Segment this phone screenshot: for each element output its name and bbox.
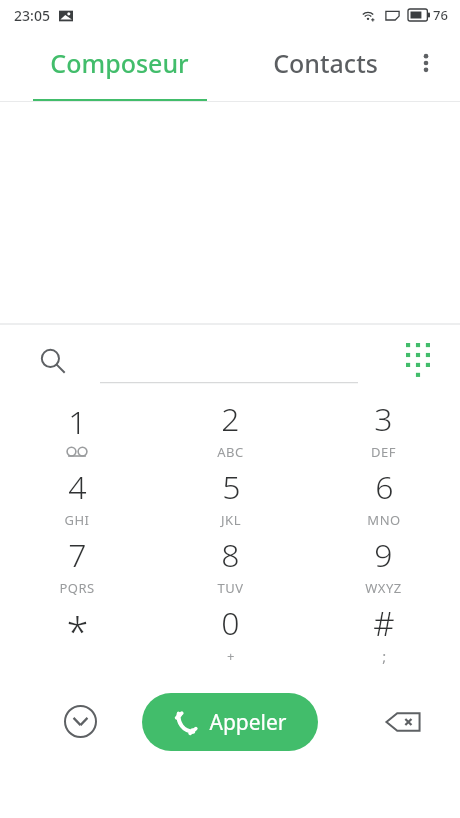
staticText: 6: [375, 465, 394, 509]
button[interactable]: Search: [28, 336, 78, 386]
button[interactable]: 8: [154, 533, 307, 601]
staticText: *: [66, 604, 89, 658]
staticText: 23:05: [14, 6, 50, 25]
button[interactable]: 5: [154, 465, 307, 533]
staticText: JKL: [221, 511, 241, 529]
button[interactable]: #: [307, 601, 460, 669]
staticText: 3: [374, 397, 393, 441]
staticText: 1: [68, 400, 87, 444]
button[interactable]: 0: [154, 601, 307, 669]
staticText: GHI: [64, 511, 90, 529]
button[interactable]: 4: [0, 465, 154, 533]
button[interactable]: 9: [307, 533, 460, 601]
button[interactable]: 3: [307, 397, 460, 465]
staticText: DEF: [371, 443, 396, 461]
button[interactable]: 2: [154, 397, 307, 465]
staticText: WXYZ: [365, 579, 402, 597]
staticText: +: [227, 647, 235, 665]
button[interactable]: 7: [0, 533, 154, 601]
staticText: 8: [221, 533, 240, 577]
staticText: 2: [221, 397, 240, 441]
staticText: Contacts: [273, 46, 378, 80]
staticText: ABC: [217, 443, 244, 461]
button[interactable]: 1: [0, 397, 154, 465]
staticText: 76: [433, 6, 448, 24]
button[interactable]: Keypad: [394, 331, 442, 379]
staticText: PQRS: [59, 579, 95, 597]
button[interactable]: Appeler: [142, 693, 318, 751]
staticText: 0: [221, 601, 240, 645]
button[interactable]: Contacts: [240, 30, 410, 102]
staticText: #: [373, 601, 395, 646]
staticText: MNO: [367, 511, 401, 529]
staticText: ;: [382, 646, 387, 666]
button[interactable]: *: [0, 601, 154, 669]
button[interactable]: Hide keypad: [56, 697, 104, 745]
staticText: 9: [374, 533, 393, 577]
staticText: TUV: [217, 579, 244, 597]
staticText: Composeur: [50, 46, 189, 80]
button[interactable]: Backspace: [378, 697, 428, 747]
button[interactable]: Composeur: [0, 30, 240, 102]
staticText: 5: [222, 465, 241, 509]
staticText: Appeler: [209, 708, 287, 737]
staticText: 4: [68, 465, 87, 509]
button[interactable]: More options: [402, 39, 450, 87]
button[interactable]: 6: [307, 465, 460, 533]
staticText: 7: [68, 533, 87, 577]
